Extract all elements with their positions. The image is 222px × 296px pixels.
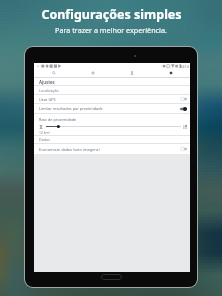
button[interactable]: Usar GPS (34, 95, 190, 103)
staticText: 04:14 (180, 64, 189, 69)
button[interactable]: Profile (112, 69, 151, 77)
button[interactable]: Limitar resultados por proximidade (34, 104, 190, 113)
button[interactable]: Economizar dados (sem imagens) (34, 144, 190, 154)
staticText: Localização (39, 88, 59, 93)
button[interactable]: Settings (151, 69, 190, 77)
button[interactable]: Search (34, 69, 73, 77)
staticText: Raio de proximidade (39, 117, 77, 122)
staticText: Limitar resultados por proximidade (39, 106, 103, 111)
staticText: Usar GPS (39, 97, 56, 102)
button[interactable]: Nearby (73, 69, 112, 77)
staticText: Para trazer a melhor experiência. (55, 25, 167, 35)
staticText: Economizar dados (sem imagens) (39, 147, 100, 152)
staticText: Dados (39, 137, 51, 142)
staticText: Ajustes (39, 79, 55, 85)
staticText: Configurações simples (41, 6, 182, 23)
staticText: 12 km² (39, 130, 50, 135)
